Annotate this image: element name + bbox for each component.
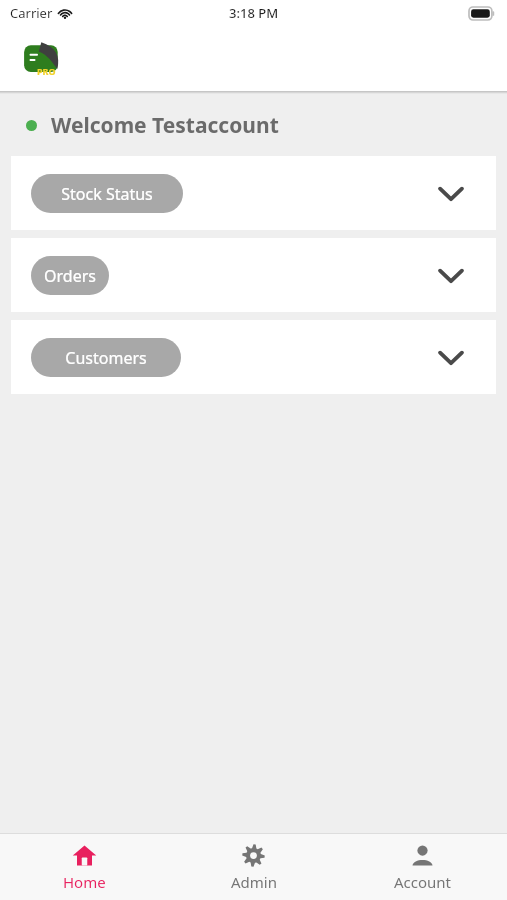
button[interactable]: Account (338, 837, 507, 898)
staticText: Admin (231, 872, 277, 892)
button[interactable]: Orders (11, 238, 496, 312)
staticText: Stock Status (61, 183, 153, 205)
other: Expand Orders (436, 260, 466, 290)
staticText: Home (63, 872, 106, 892)
button[interactable]: Stock Status (11, 156, 496, 230)
button[interactable]: Admin (169, 837, 338, 898)
staticText: Customers (65, 347, 147, 369)
staticText: Orders (44, 265, 96, 287)
button[interactable]: App logo (22, 40, 64, 78)
button[interactable]: Customers (11, 320, 496, 394)
staticText: Welcome Testaccount (51, 111, 279, 140)
staticText: 3:18 PM (229, 4, 279, 22)
staticText: Carrier (10, 4, 53, 22)
other: Expand Customers (436, 342, 466, 372)
staticText: PRO (37, 65, 56, 77)
other: Expand Stock Status (436, 178, 466, 208)
button[interactable]: Home (0, 837, 169, 898)
staticText: Account (394, 872, 452, 892)
